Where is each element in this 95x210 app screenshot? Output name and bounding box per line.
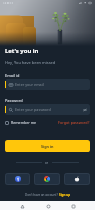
button[interactable]: Home — [44, 202, 52, 210]
button[interactable]: Remember me — [5, 119, 37, 126]
staticText: Don't have an account? — [25, 193, 59, 197]
button[interactable]: Enter your email — [5, 79, 90, 90]
staticText: Enter your email — [15, 82, 44, 87]
button[interactable]: Forgot password? — [58, 119, 90, 126]
staticText: Remember me — [11, 120, 37, 125]
staticText: Sign in — [41, 144, 54, 149]
button[interactable]: Sign in — [5, 140, 90, 152]
staticText: Email id — [5, 73, 20, 78]
staticText: Let's you in — [5, 47, 39, 55]
other: Show password — [83, 108, 87, 112]
button[interactable]: Enter your password — [5, 104, 90, 115]
staticText: Password — [5, 98, 23, 103]
staticText: or — [45, 161, 49, 165]
button[interactable]: Back — [18, 202, 26, 210]
button[interactable]: Recent apps — [69, 202, 77, 210]
button[interactable]: Sign up — [59, 193, 71, 197]
button[interactable]: Sign in with Google — [34, 173, 60, 185]
staticText: Hey, You have been missed — [5, 60, 56, 65]
button[interactable]: Sign in with Facebook — [5, 173, 30, 185]
staticText: Enter your password — [15, 107, 51, 112]
button[interactable]: Sign in with Apple — [64, 173, 90, 185]
